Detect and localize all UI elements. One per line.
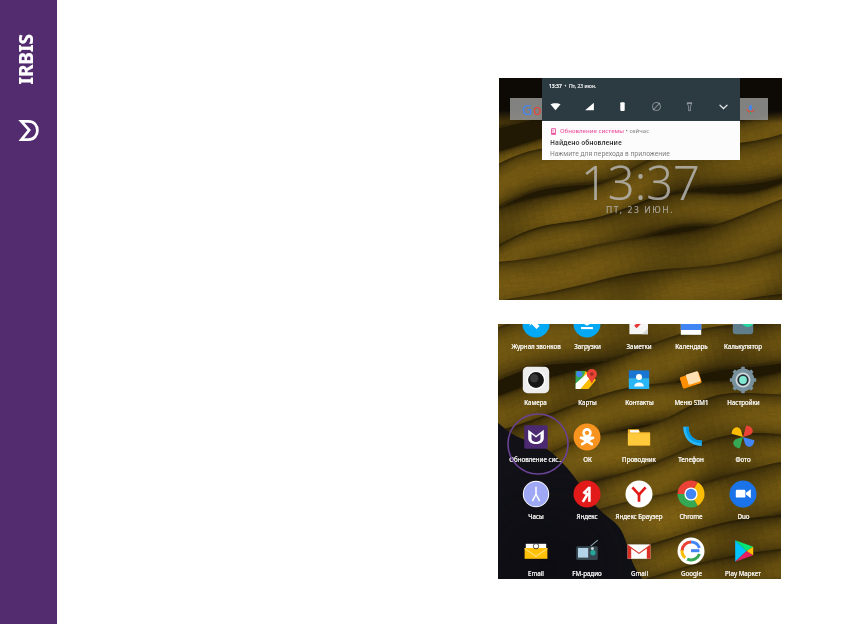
staticText: Google (681, 569, 702, 577)
button[interactable]: Do not disturb (648, 98, 664, 114)
staticText: • Пт, 23 июн. (562, 83, 597, 90)
button[interactable]: Меню SIM1 (665, 359, 717, 415)
staticText: Карты (578, 398, 597, 406)
button[interactable]: Expand quick settings (715, 98, 731, 114)
staticText: Яндекс (576, 512, 598, 520)
staticText: o (542, 100, 551, 119)
staticText: Часы (528, 512, 544, 520)
staticText: Фото (735, 455, 751, 463)
staticText: Контакты (625, 398, 654, 406)
staticText: l (560, 100, 564, 119)
staticText: Нажмите для перехода в приложение (550, 149, 670, 158)
staticText: Обновление сис.. (509, 455, 562, 463)
button[interactable]: Журнал звонков (510, 324, 561, 359)
staticText: Заметки (626, 342, 652, 350)
button[interactable]: Яндекс Браузер (613, 473, 665, 529)
button[interactable]: Фото (717, 416, 769, 472)
other: Highlighted app (507, 413, 569, 475)
staticText: G (522, 100, 533, 119)
button[interactable]: Обновление системы (542, 121, 740, 160)
staticText: Chrome (679, 512, 703, 520)
staticText: FM-радио (572, 569, 602, 577)
staticText: g (551, 100, 560, 119)
button[interactable]: Калькулятор (717, 324, 769, 359)
button[interactable]: ОК (561, 416, 613, 472)
button[interactable]: Карты (561, 359, 613, 415)
staticText: Обновление системы (560, 127, 624, 135)
button[interactable]: Часы (510, 473, 561, 529)
staticText: Календарь (675, 342, 708, 350)
button[interactable]: Настройки (717, 359, 769, 415)
button[interactable]: Wi-Fi (547, 98, 563, 114)
button[interactable]: Chrome (665, 473, 717, 529)
button[interactable]: G (510, 98, 768, 120)
button[interactable]: Яндекс (561, 473, 613, 529)
button[interactable]: FM-радио (561, 530, 613, 579)
button[interactable]: Play Маркет (717, 530, 769, 579)
button[interactable]: Контакты (613, 359, 665, 415)
button[interactable]: Телефон (665, 416, 717, 472)
staticText: 13:37 (581, 150, 700, 214)
staticText: Duo (737, 512, 750, 520)
button[interactable]: Заметки (613, 324, 665, 359)
staticText: Email (528, 569, 544, 577)
staticText: Телефон (678, 455, 704, 463)
button[interactable]: Календарь (665, 324, 717, 359)
staticText: o (533, 100, 542, 119)
button[interactable]: Mobile data (581, 98, 597, 114)
button[interactable]: Google (665, 530, 717, 579)
button[interactable]: Проводник (613, 416, 665, 472)
button[interactable]: Камера (510, 359, 561, 415)
staticText: 13:37 (549, 83, 562, 90)
staticText: Настройки (727, 398, 760, 406)
staticText: Найдено обновление (550, 138, 622, 147)
staticText: • сейчас (624, 127, 650, 135)
button[interactable]: Email (510, 530, 561, 579)
other: Voice search (745, 104, 756, 115)
button[interactable]: Battery (614, 98, 630, 114)
button[interactable]: Flashlight (681, 98, 697, 114)
staticText: Меню SIM1 (674, 398, 709, 406)
staticText: Проводник (622, 455, 656, 463)
staticText: Калькулятор (724, 342, 762, 350)
staticText: ОК (583, 455, 592, 463)
button[interactable]: Обновление сис.. (510, 416, 561, 472)
staticText: ПТ, 23 ИЮН. (606, 204, 675, 216)
staticText: Камера (524, 398, 547, 406)
other: IRBIS (20, 120, 40, 140)
button[interactable]: Загрузки (561, 324, 613, 359)
staticText: Загрузки (574, 342, 601, 350)
staticText: Яндекс Браузер (615, 512, 663, 520)
button[interactable]: Duo (717, 473, 769, 529)
button[interactable]: Gmail (613, 530, 665, 579)
staticText: Gmail (631, 569, 648, 577)
staticText: IRBIS (12, 33, 34, 84)
staticText: Play Маркет (725, 569, 761, 577)
staticText: Журнал звонков (511, 342, 561, 350)
